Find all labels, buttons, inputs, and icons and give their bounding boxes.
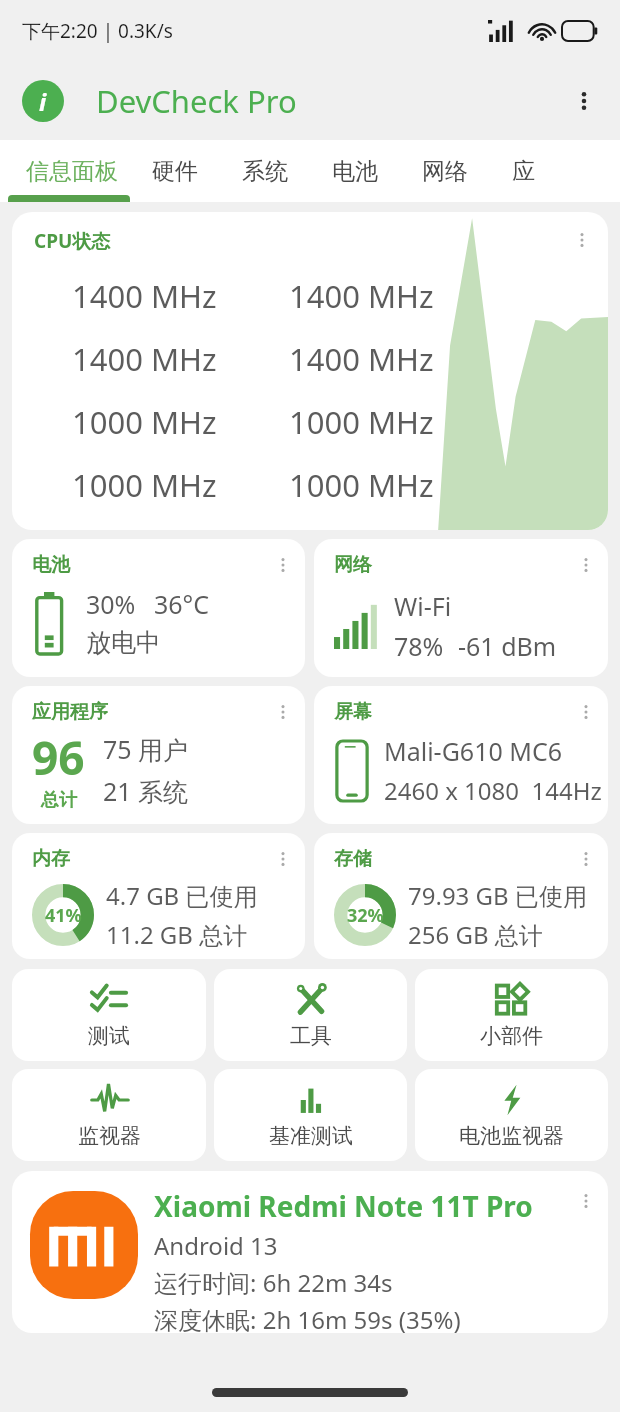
button[interactable]: 基准测试 [214,1069,407,1161]
button[interactable]: 硬件 [130,140,220,202]
staticText: 小部件 [480,1023,543,1049]
staticText: 运行时间: 6h 22m 34s [154,1266,393,1299]
staticText: 总计 [41,789,77,812]
staticText: 1400 MHz [289,275,434,317]
button[interactable]: 应 [490,140,557,202]
button[interactable]: 内存 [12,833,305,959]
staticText: 36°C [154,587,210,621]
button[interactable]: CPU options [568,226,596,254]
staticText: 电池 [32,553,70,577]
staticText: -61 dBm [458,629,557,663]
staticText: DevCheck Pro [96,80,297,122]
staticText: Android 13 [154,1229,278,1262]
staticText: 78% [394,629,444,663]
button[interactable]: 工具 [214,969,407,1061]
staticText: 79.93 GB 已使用 [408,879,587,912]
staticText: Xiaomi Redmi Note 11T Pro [154,1187,533,1225]
staticText: 信息面板 [26,157,118,186]
staticText: 1000 MHz [289,464,434,506]
button[interactable]: Network options [572,551,600,579]
staticText: 应 [512,157,535,186]
button[interactable]: Battery options [269,551,297,579]
button[interactable]: Device options [572,1187,600,1215]
staticText: 下午2:20 | 0.3K/s [22,18,173,44]
staticText: 75 用户 [103,732,189,766]
staticText: Mali-G610 MC6 [384,734,563,768]
staticText: 4.7 GB 已使用 [106,879,258,912]
staticText: 1000 MHz [72,464,217,506]
button[interactable]: 网络 [314,539,608,677]
staticText: 21 系统 [103,774,189,808]
button[interactable]: Apps options [269,698,297,726]
button[interactable]: 电池监视器 [415,1069,608,1161]
staticText: 1400 MHz [289,338,434,380]
button[interactable]: 存储 [314,833,608,959]
staticText: 基准测试 [269,1123,353,1149]
staticText: 深度休眠: 2h 16m 59s (35%) [154,1303,461,1333]
staticText: 硬件 [152,157,198,186]
staticText: 30% [86,587,136,621]
button[interactable]: 系统 [220,140,310,202]
staticText: 41% [45,903,82,928]
button[interactable]: 监视器 [12,1069,206,1161]
button[interactable]: 应用程序 [12,686,305,824]
staticText: 32% [347,903,384,928]
staticText: 工具 [290,1023,332,1049]
button[interactable]: 内存 options [269,845,297,873]
button[interactable]: Screen options [572,698,600,726]
button[interactable]: 测试 [12,969,206,1061]
staticText: 系统 [242,157,288,186]
staticText: CPU状态 [34,228,111,254]
staticText: 2460 x 1080 144Hz [384,774,602,807]
staticText: 网络 [422,157,468,186]
staticText: 96 [32,726,85,789]
staticText: 1400 MHz [72,338,217,380]
staticText: Wi-Fi [394,589,452,623]
staticText: 测试 [88,1023,130,1049]
staticText: 放电中 [86,627,161,658]
button[interactable]: 存储 options [572,845,600,873]
staticText: 电池 [332,157,378,186]
button[interactable]: 信息面板 [14,140,130,202]
button[interactable]: 电池 [310,140,400,202]
staticText: 监视器 [78,1123,141,1149]
staticText: i [39,85,47,118]
staticText: 1000 MHz [72,401,217,443]
button[interactable]: 电池 [12,539,305,677]
staticText: 11.2 GB 总计 [106,918,248,951]
staticText: 屏幕 [334,700,372,724]
button[interactable]: CPU状态 [12,212,608,530]
button[interactable]: 小部件 [415,969,608,1061]
button[interactable]: About [22,80,64,122]
staticText: 1000 MHz [289,401,434,443]
staticText: 内存 [32,847,70,871]
staticText: 应用程序 [32,700,108,724]
staticText: 网络 [334,553,372,577]
staticText: 电池监视器 [459,1123,564,1149]
staticText: 1400 MHz [72,275,217,317]
staticText: 256 GB 总计 [408,918,543,951]
staticText: 存储 [334,847,372,871]
button[interactable]: 屏幕 [314,686,608,824]
button[interactable]: More options [562,79,606,123]
button[interactable]: 网络 [400,140,490,202]
button[interactable]: Xiaomi Redmi Note 11T Pro [12,1171,608,1333]
